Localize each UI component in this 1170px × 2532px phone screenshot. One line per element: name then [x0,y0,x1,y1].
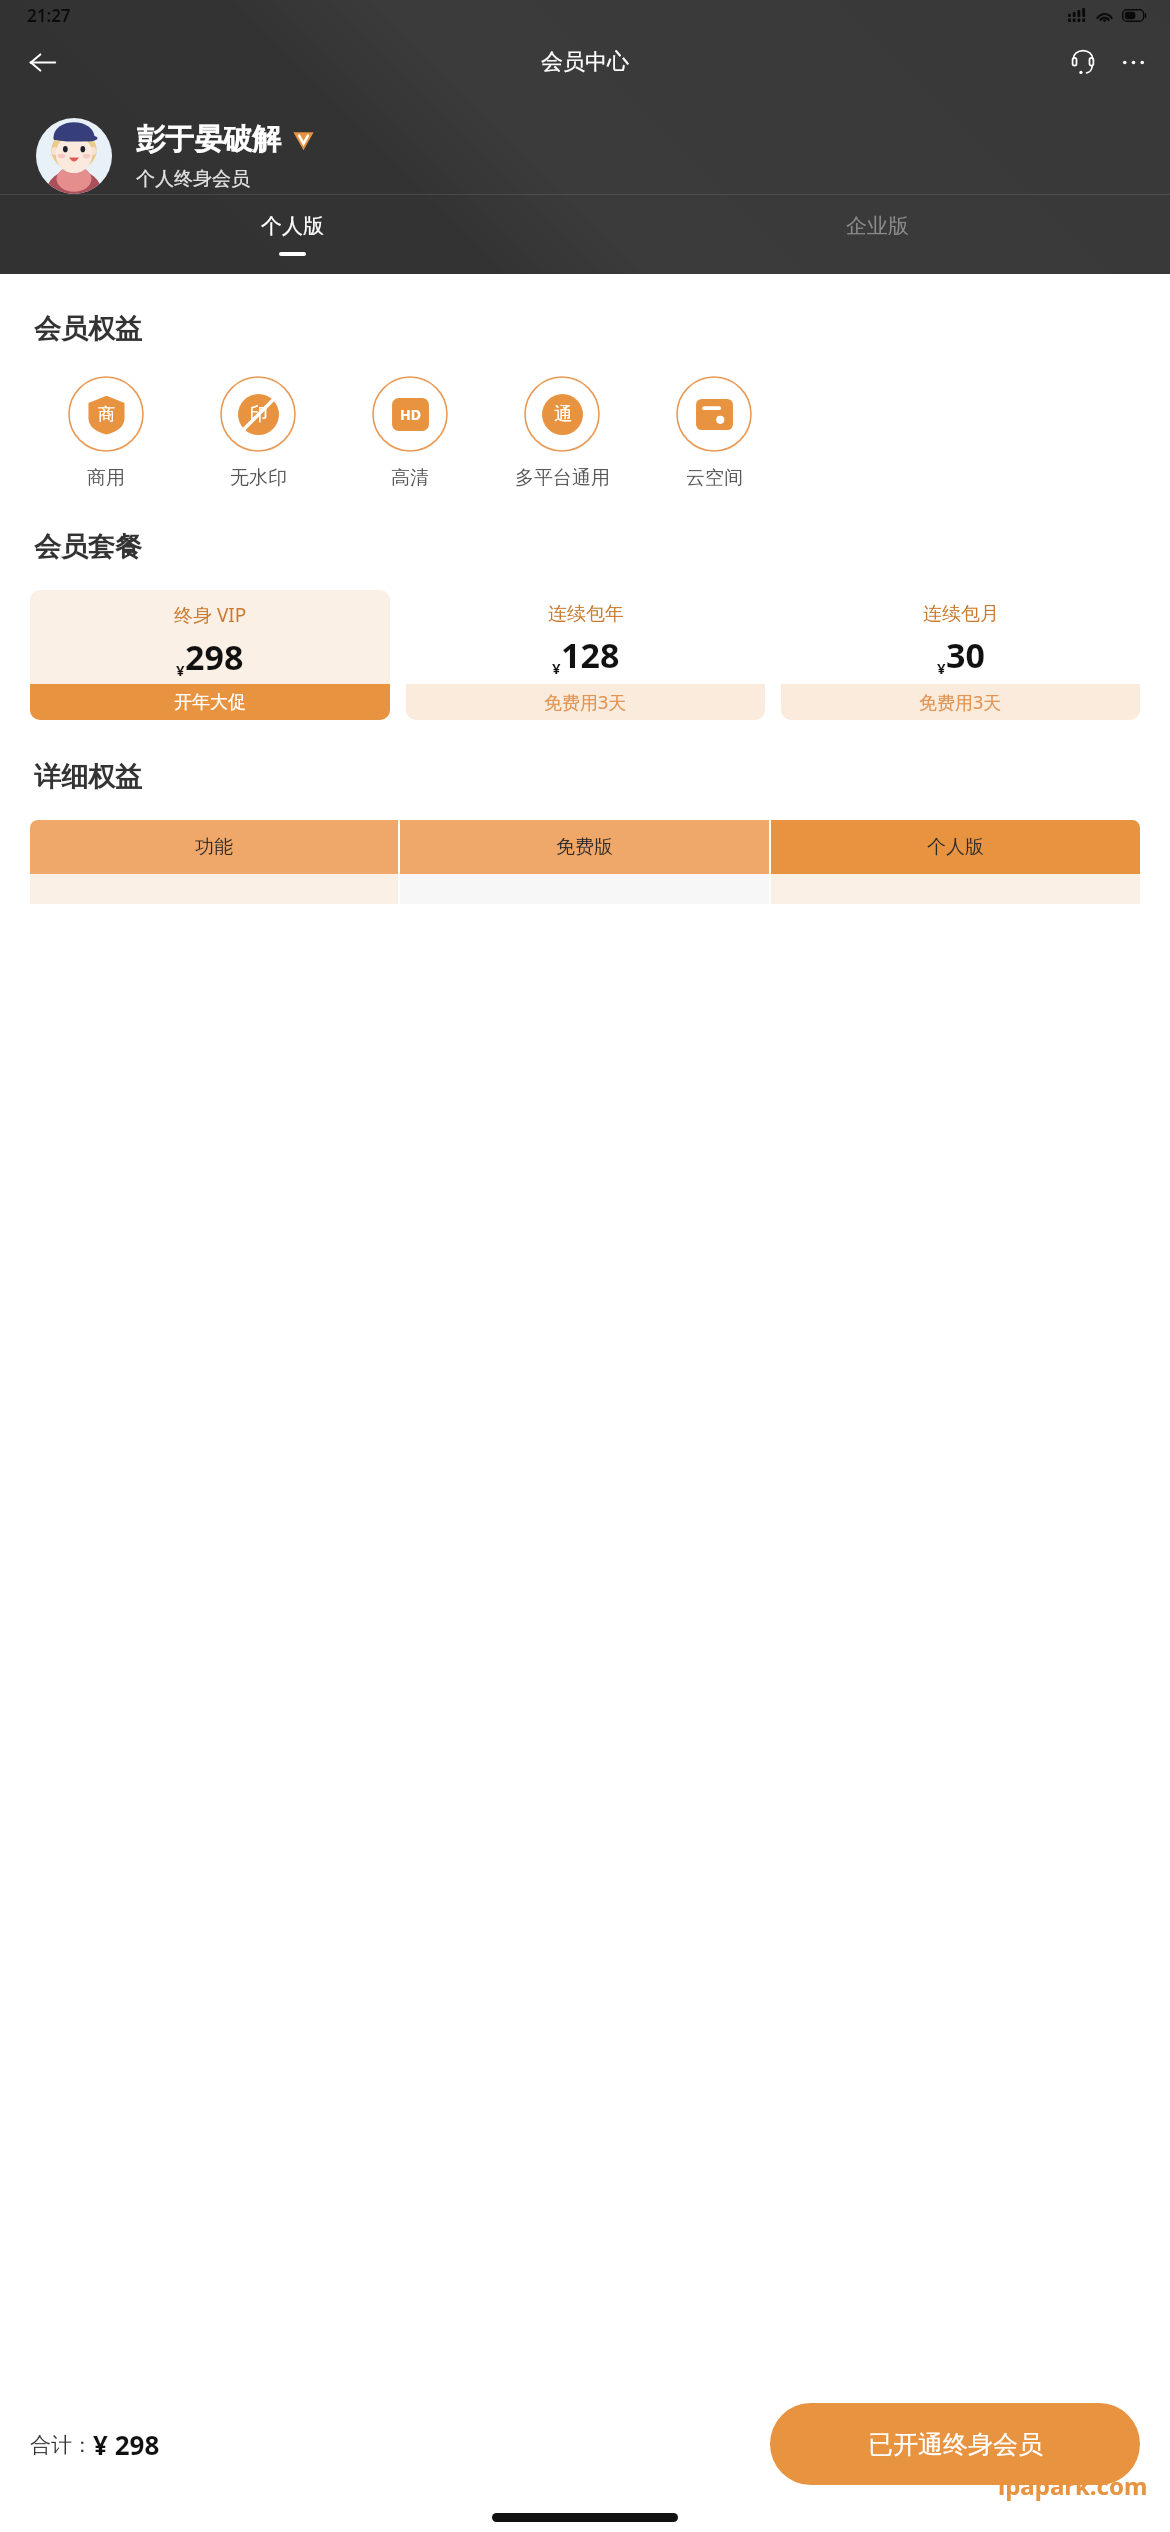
staticText: 个人版 [927,835,984,859]
button[interactable]: 个人版 [771,820,1140,874]
staticText: 会员权益 [34,312,142,346]
button[interactable]: 免费版 [400,820,769,874]
staticText: HD [400,405,421,424]
button[interactable]: 通 [486,376,638,490]
staticText: 免费用3天 [544,690,627,715]
button[interactable]: 终身 VIP [30,590,390,720]
staticText: 298 [185,634,244,680]
button[interactable]: Back [14,34,70,90]
staticText: 彭于晏破解 [136,121,281,158]
staticText: 商 [98,404,115,425]
staticText: 30 [946,632,985,678]
staticText: 会员中心 [541,48,629,76]
staticText: 免费用3天 [919,690,1002,715]
staticText: 合计： [30,2432,93,2458]
button[interactable]: 云空间 [638,376,790,490]
button[interactable]: 彭于晏破解 [36,118,1170,194]
staticText: 已开通终身会员 [868,2429,1043,2460]
staticText: 连续包月 [923,602,999,626]
staticText: ¥ [937,658,946,678]
staticText: ¥ [176,660,185,680]
staticText: 终身 VIP [174,602,247,628]
staticText: 功能 [195,835,233,859]
staticText: 商用 [87,466,125,490]
button[interactable]: 已开通终身会员 [770,2403,1140,2485]
staticText: 个人版 [261,213,324,239]
staticText: 个人终身会员 [136,167,250,191]
button[interactable]: More options [1108,37,1158,87]
staticText: 多平台通用 [515,466,610,490]
staticText: 高清 [391,466,429,490]
staticText: 会员套餐 [34,530,142,564]
button[interactable]: 连续包年 [406,590,765,720]
staticText: 通 [554,403,572,426]
staticText: ¥ [552,658,561,678]
staticText: 开年大促 [174,691,246,714]
staticText: 连续包年 [548,602,624,626]
staticText: 128 [561,632,620,678]
button[interactable]: HD [334,376,486,490]
staticText: 免费版 [556,835,613,859]
button[interactable]: Customer support [1058,37,1108,87]
staticText: 印 [250,403,268,426]
staticText: 无水印 [230,466,287,490]
staticText: ipapark.com [998,2469,1148,2502]
staticText: ¥ 298 [93,2427,160,2462]
button[interactable]: 商 [30,376,182,490]
staticText: 21:27 [27,4,71,27]
staticText: 云空间 [686,466,743,490]
button[interactable]: 连续包月 [781,590,1140,720]
button[interactable]: 印 [182,376,334,490]
button[interactable]: 功能 [30,820,398,874]
staticText: 详细权益 [34,760,142,794]
button[interactable]: 个人版 [0,195,585,274]
button[interactable]: 企业版 [585,195,1170,274]
staticText: 企业版 [846,213,909,239]
